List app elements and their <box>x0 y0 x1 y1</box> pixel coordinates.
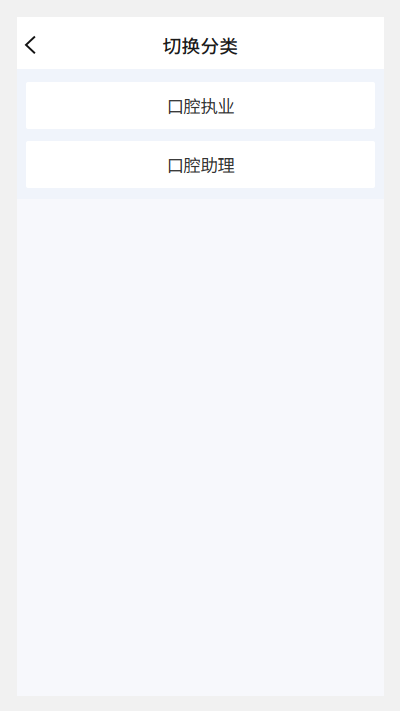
staticText: 切换分类 <box>162 31 238 58</box>
button[interactable]: Back <box>17 20 44 66</box>
staticText: 口腔助理 <box>166 152 234 177</box>
button[interactable]: 口腔执业 <box>26 82 375 129</box>
staticText: 口腔执业 <box>166 93 234 118</box>
button[interactable]: 口腔助理 <box>26 141 375 188</box>
